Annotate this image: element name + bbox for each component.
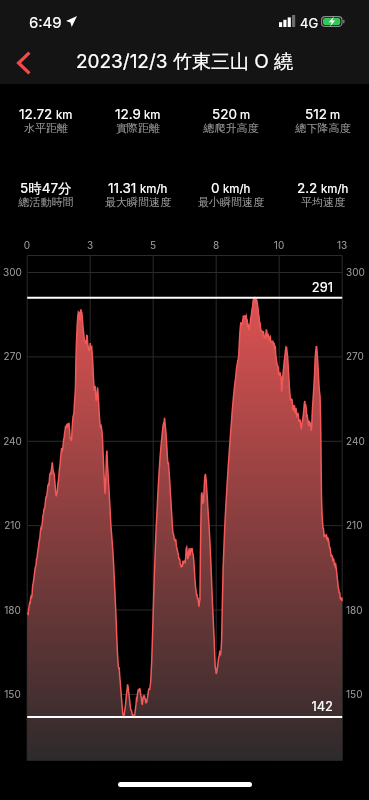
staticText: 520 <box>212 106 237 122</box>
staticText: 6:49 <box>29 13 62 31</box>
staticText: 5 <box>141 239 165 251</box>
staticText: m <box>330 108 341 122</box>
staticText: 總活動時間 <box>0 195 106 209</box>
staticText: 最大瞬間速度 <box>78 195 198 209</box>
button[interactable]: Back <box>0 42 48 84</box>
staticText: 8 <box>204 239 228 251</box>
staticText: 150 <box>346 688 369 700</box>
staticText: km/h <box>321 182 349 196</box>
staticText: 180 <box>0 604 25 616</box>
staticText: km <box>56 108 73 122</box>
staticText: 2.2 <box>297 180 318 196</box>
staticText: 142 <box>288 698 333 714</box>
staticText: 12.72 <box>19 106 53 122</box>
staticText: 最小瞬間速度 <box>171 195 291 209</box>
staticText: 210 <box>346 519 369 531</box>
staticText: km/h <box>140 182 168 196</box>
staticText: 2023/12/3 竹東三山 O 繞 <box>0 50 369 74</box>
staticText: 270 <box>0 350 25 362</box>
staticText: 12.9 <box>115 106 141 122</box>
staticText: 240 <box>346 435 369 447</box>
staticText: 291 <box>288 279 333 295</box>
staticText: 0 <box>15 239 39 251</box>
staticText: 300 <box>0 266 25 278</box>
staticText: 150 <box>0 688 25 700</box>
staticText: 11.31 <box>108 180 137 196</box>
staticText: 270 <box>346 350 369 362</box>
staticText: km/h <box>223 182 251 196</box>
staticText: 512 <box>305 106 327 122</box>
staticText: 實際距離 <box>78 121 198 135</box>
staticText: 4G <box>300 15 319 31</box>
staticText: 10 <box>267 239 291 251</box>
staticText: 水平距離 <box>0 121 106 135</box>
staticText: 總爬升高度 <box>171 121 291 135</box>
staticText: 180 <box>346 604 369 616</box>
staticText: 總下降高度 <box>263 121 369 135</box>
staticText: 0 <box>211 180 220 196</box>
staticText: 210 <box>0 519 25 531</box>
staticText: 300 <box>346 266 369 278</box>
staticText: km <box>144 108 161 122</box>
staticText: 5時47分 <box>20 180 72 197</box>
staticText: 平均速度 <box>263 195 369 209</box>
staticText: m <box>240 108 251 122</box>
staticText: 13 <box>330 239 354 251</box>
staticText: 240 <box>0 435 25 447</box>
staticText: 3 <box>78 239 102 251</box>
